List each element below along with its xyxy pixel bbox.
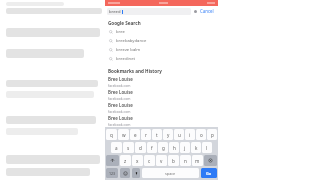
staticText: facebook.com bbox=[108, 109, 131, 114]
button[interactable]: z bbox=[120, 155, 131, 166]
staticText: m bbox=[195, 158, 200, 164]
button[interactable]: 123 bbox=[106, 168, 118, 178]
button[interactable]: y bbox=[163, 129, 173, 140]
button[interactable]: a bbox=[111, 142, 122, 153]
staticText: facebook.com bbox=[108, 122, 131, 127]
button[interactable]: x bbox=[132, 155, 143, 166]
button[interactable]: n bbox=[180, 155, 191, 166]
staticText: Bree Louise bbox=[108, 89, 133, 95]
button[interactable]: b bbox=[168, 155, 179, 166]
button[interactable]: Go bbox=[201, 168, 217, 178]
staticText: 123 bbox=[109, 171, 116, 176]
button[interactable]: i bbox=[185, 129, 195, 140]
staticText: z bbox=[124, 158, 127, 164]
staticText: bree bbox=[116, 29, 125, 35]
button[interactable]: Delete bbox=[204, 155, 217, 166]
button[interactable]: e bbox=[130, 129, 140, 140]
staticText: d bbox=[139, 145, 142, 151]
button[interactable]: breedinet bbox=[105, 54, 218, 63]
button[interactable]: breed bbox=[107, 8, 191, 15]
button[interactable]: Bree Louise bbox=[105, 114, 218, 127]
button[interactable]: k bbox=[191, 142, 201, 153]
staticText: k bbox=[195, 145, 198, 151]
staticText: breeze balm bbox=[116, 47, 141, 53]
staticText: Bree Louise bbox=[108, 102, 133, 108]
staticText: facebook.com bbox=[108, 96, 131, 101]
button[interactable]: Clear bbox=[193, 9, 197, 13]
staticText: f bbox=[151, 145, 153, 151]
staticText: l bbox=[206, 145, 208, 151]
staticText: space bbox=[165, 171, 176, 176]
button[interactable]: breeze balm bbox=[105, 45, 218, 54]
button[interactable]: Shift bbox=[106, 155, 119, 166]
button[interactable]: r bbox=[141, 129, 151, 140]
button[interactable]: w bbox=[118, 129, 129, 140]
button[interactable]: bree bbox=[105, 27, 218, 36]
button[interactable]: v bbox=[156, 155, 167, 166]
staticText: Cancel bbox=[200, 8, 214, 14]
button[interactable]: f bbox=[147, 142, 157, 153]
staticText: breed bbox=[109, 9, 121, 15]
button[interactable]: u bbox=[174, 129, 184, 140]
staticText: x bbox=[136, 158, 139, 164]
staticText: facebook.com bbox=[108, 83, 131, 88]
staticText: Go bbox=[206, 171, 212, 176]
staticText: g bbox=[162, 145, 165, 151]
staticText: t bbox=[156, 132, 158, 138]
staticText: w bbox=[122, 132, 126, 138]
button[interactable]: Cancel bbox=[199, 8, 215, 14]
button[interactable]: s bbox=[123, 142, 134, 153]
staticText: r bbox=[145, 132, 147, 138]
staticText: q bbox=[110, 132, 113, 138]
staticText: v bbox=[160, 158, 163, 164]
staticText: n bbox=[184, 158, 187, 164]
staticText: j bbox=[184, 145, 186, 151]
button[interactable]: g bbox=[158, 142, 168, 153]
staticText: y bbox=[167, 132, 170, 138]
staticText: Google Search bbox=[108, 20, 141, 26]
button[interactable]: p bbox=[207, 129, 217, 140]
staticText: Bree Louise bbox=[108, 76, 133, 82]
button[interactable]: Bree Louise bbox=[105, 75, 218, 88]
staticText: p bbox=[211, 132, 214, 138]
staticText: Bookmarks and History bbox=[108, 68, 162, 74]
button[interactable]: d bbox=[135, 142, 146, 153]
button[interactable]: h bbox=[169, 142, 179, 153]
staticText: b bbox=[172, 158, 175, 164]
button[interactable]: c bbox=[144, 155, 155, 166]
button[interactable]: o bbox=[196, 129, 206, 140]
button[interactable]: Emoji bbox=[120, 168, 130, 178]
button[interactable]: Bree Louise bbox=[105, 101, 218, 114]
button[interactable]: l bbox=[202, 142, 212, 153]
button[interactable]: t bbox=[152, 129, 162, 140]
staticText: a bbox=[115, 145, 118, 151]
staticText: breedinet bbox=[116, 56, 136, 62]
button[interactable]: j bbox=[180, 142, 190, 153]
button[interactable]: m bbox=[192, 155, 203, 166]
button[interactable]: Dictate bbox=[132, 168, 140, 178]
staticText: i bbox=[189, 132, 191, 138]
button[interactable]: breebabydance bbox=[105, 36, 218, 45]
button[interactable]: space bbox=[142, 168, 199, 178]
staticText: breebabydance bbox=[116, 38, 147, 44]
staticText: u bbox=[178, 132, 181, 138]
staticText: s bbox=[127, 145, 130, 151]
staticText: o bbox=[200, 132, 203, 138]
staticText: h bbox=[173, 145, 176, 151]
staticText: e bbox=[134, 132, 137, 138]
staticText: Bree Louise bbox=[108, 115, 133, 121]
button[interactable]: Bree Louise bbox=[105, 88, 218, 101]
button[interactable]: q bbox=[106, 129, 117, 140]
staticText: c bbox=[148, 158, 151, 164]
